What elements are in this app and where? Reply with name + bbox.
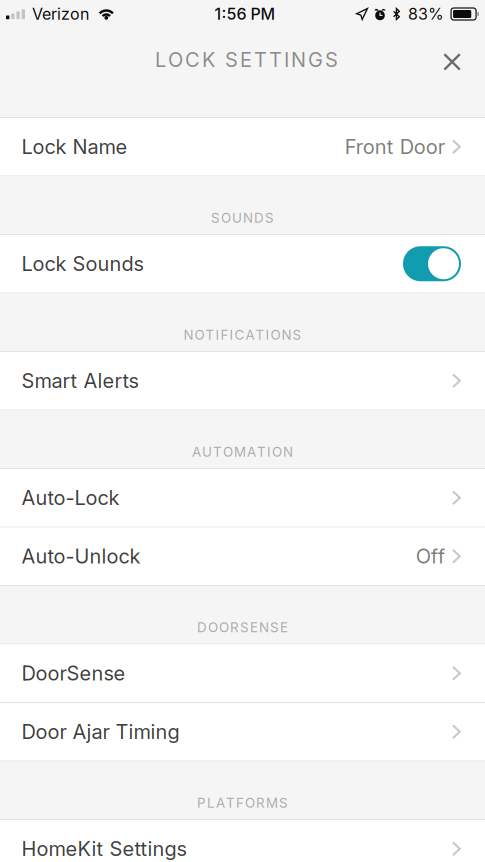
button[interactable]: Close (427, 37, 485, 87)
staticText: N O T I F I C A T I O N S (183, 327, 301, 343)
staticText: Smart Alerts (21, 369, 138, 393)
staticText: HomeKit Settings (21, 837, 186, 861)
staticText: A U T O M A T I O N (192, 444, 293, 460)
button[interactable]: HomeKit Settings (0, 820, 485, 862)
staticText: 1:56 PM (214, 4, 275, 24)
staticText: Off (416, 544, 445, 568)
staticText: D O O R S E N S E (197, 619, 288, 635)
staticText: Front Door (345, 135, 445, 159)
button[interactable]: DoorSense (0, 644, 485, 703)
staticText: S O U N D S (211, 210, 274, 226)
staticText: Door Ajar Timing (21, 720, 179, 744)
staticText: Lock Sounds (21, 252, 143, 276)
staticText: Lock Name (21, 135, 127, 159)
button[interactable]: Lock Name (0, 118, 485, 176)
button[interactable]: Door Ajar Timing (0, 703, 485, 761)
staticText: Auto-Unlock (21, 544, 140, 568)
staticText: L O C K S E T T I N G S (155, 47, 338, 72)
button[interactable]: Auto-Lock (0, 469, 485, 527)
button[interactable]: Smart Alerts (0, 352, 485, 410)
staticText: P L A T F O R M S (197, 795, 288, 811)
button[interactable]: Lock Sounds (403, 246, 461, 281)
staticText: 83% (408, 4, 444, 24)
staticText: Auto-Lock (21, 486, 119, 510)
button[interactable]: Auto-Unlock (0, 527, 485, 586)
staticText: DoorSense (21, 661, 125, 685)
staticText: Verizon (32, 4, 89, 24)
